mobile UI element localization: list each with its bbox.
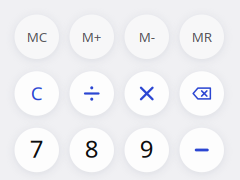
- staticText: 9: [140, 133, 154, 164]
- button[interactable]: [179, 71, 224, 116]
- button[interactable]: [124, 71, 169, 116]
- staticText: 7: [30, 133, 44, 164]
- button[interactable]: 7: [14, 128, 59, 172]
- button[interactable]: 8: [69, 128, 114, 172]
- staticText: M+: [82, 28, 102, 46]
- button[interactable]: [179, 128, 224, 172]
- button[interactable]: MR: [179, 14, 224, 59]
- staticText: MR: [192, 28, 212, 46]
- button[interactable]: M+: [69, 14, 114, 59]
- staticText: C: [31, 81, 43, 105]
- staticText: MC: [27, 28, 47, 46]
- button[interactable]: M-: [124, 14, 169, 59]
- button[interactable]: MC: [14, 14, 59, 59]
- button[interactable]: [69, 71, 114, 116]
- staticText: 8: [85, 133, 99, 164]
- staticText: M-: [139, 28, 155, 46]
- button[interactable]: 9: [124, 128, 169, 172]
- button[interactable]: C: [14, 71, 59, 116]
